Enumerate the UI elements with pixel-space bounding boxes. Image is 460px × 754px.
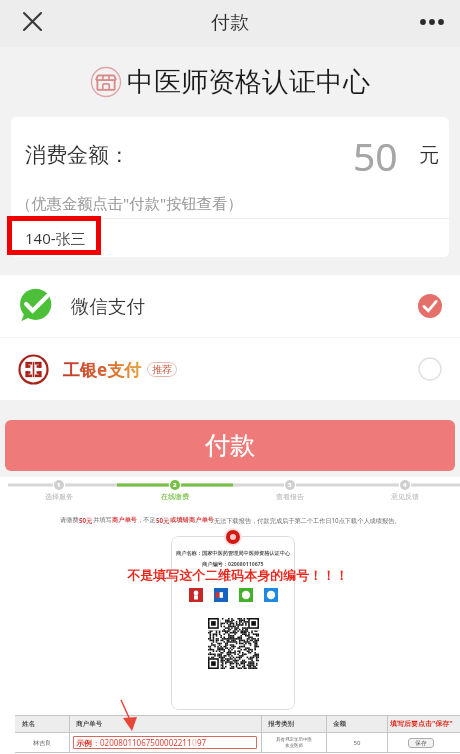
staticText: 50元 bbox=[156, 516, 170, 524]
staticText: 具有规定学历中医 执业医师 bbox=[262, 737, 326, 749]
staticText: 商户单号 bbox=[112, 516, 137, 524]
button[interactable]: 微信支付 bbox=[0, 275, 460, 337]
staticText: 林吉良 bbox=[15, 739, 69, 747]
staticText: 0 bbox=[192, 737, 197, 748]
staticText: ，不足 bbox=[137, 516, 156, 524]
staticText: 商户单号 bbox=[76, 720, 261, 728]
staticText: 请缴费 bbox=[60, 516, 79, 524]
staticText: 微信支付 bbox=[71, 295, 145, 318]
staticText: 140-张三 bbox=[25, 228, 86, 248]
staticText: 选择服务 bbox=[45, 492, 73, 501]
staticText: 消费金额： bbox=[25, 142, 130, 168]
staticText: 商户编号：020080110675 bbox=[202, 560, 264, 567]
staticText: 并填写 bbox=[93, 516, 112, 524]
staticText: 金额 bbox=[333, 720, 387, 728]
staticText: 50 bbox=[327, 739, 387, 747]
staticText: 1 bbox=[57, 481, 61, 489]
staticText: 元 bbox=[419, 143, 439, 168]
staticText: 中医师资格认证中心 bbox=[127, 65, 370, 99]
staticText: 02008011067500002211 bbox=[100, 737, 192, 748]
staticText: 工银e支付 bbox=[63, 358, 142, 381]
staticText: 商户名称：国家中医药管理局中医师资格认证中心 bbox=[176, 550, 291, 557]
staticText: 2 bbox=[173, 481, 177, 489]
button[interactable]: 保存 bbox=[415, 739, 427, 747]
button[interactable]: 工银e支付 bbox=[0, 338, 460, 400]
staticText: 付款 bbox=[205, 430, 255, 461]
staticText: 3 bbox=[288, 481, 292, 489]
staticText: 在线缴费 bbox=[161, 492, 189, 501]
staticText: 付款 bbox=[211, 11, 249, 35]
staticText: 保存 bbox=[415, 739, 427, 747]
staticText: 无法下载报告，付款完成后于第二个工作日10点下载个人成绩报告。 bbox=[214, 516, 401, 524]
staticText: 商户单号 bbox=[189, 516, 214, 524]
staticText: 97 bbox=[197, 737, 207, 748]
staticText: 意见反馈 bbox=[391, 492, 419, 501]
button[interactable]: Close bbox=[14, 3, 51, 40]
staticText: 4 bbox=[403, 481, 407, 489]
staticText: 示例 bbox=[76, 738, 92, 748]
button[interactable]: 付款 bbox=[5, 420, 455, 471]
staticText: 50 bbox=[353, 129, 398, 182]
staticText: 姓名 bbox=[22, 720, 69, 728]
staticText: 填写后要点击"保存" bbox=[390, 719, 453, 729]
staticText: 不是填写这个二维码本身的编号！！！ bbox=[127, 567, 348, 583]
staticText: 查看报告 bbox=[276, 492, 304, 501]
staticText: 报考类别 bbox=[268, 720, 326, 728]
staticText: 或填错 bbox=[170, 516, 189, 524]
staticText: 50元 bbox=[79, 516, 93, 524]
staticText: 推荐 bbox=[152, 363, 172, 376]
staticText: （优惠金额点击"付款"按钮查看） bbox=[16, 193, 243, 214]
staticText: ： bbox=[92, 738, 100, 748]
button[interactable]: More options bbox=[413, 3, 450, 40]
